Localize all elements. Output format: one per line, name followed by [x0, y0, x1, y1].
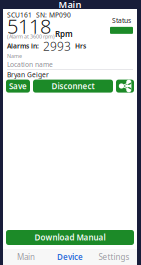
staticText: Hrs: [75, 42, 86, 50]
staticText: SCU161 SN: MP090: [7, 11, 71, 19]
button[interactable]: Disconnect: [33, 80, 113, 93]
staticText: Settings: [98, 252, 129, 262]
button[interactable]: Settings: [92, 249, 136, 265]
staticText: 2993: [43, 38, 71, 54]
staticText: Download Manual: [34, 232, 105, 243]
staticText: Main: [17, 252, 35, 262]
button[interactable]: Device: [48, 249, 92, 265]
button[interactable]: Share: [116, 80, 134, 93]
button[interactable]: Download Manual: [6, 230, 134, 245]
staticText: Status: [112, 16, 131, 25]
staticText: Device: [57, 252, 83, 262]
button[interactable]: Save: [6, 80, 30, 93]
staticText: Name: [7, 52, 22, 60]
staticText: Alarms in:: [7, 42, 39, 50]
staticText: 5118: [7, 13, 51, 39]
button[interactable]: Main: [4, 249, 48, 265]
staticText: Rpm: [55, 29, 73, 39]
staticText: Disconnect: [51, 81, 94, 91]
staticText: (Alarm at 3600 rpm): [7, 33, 55, 40]
staticText: Location name: [7, 60, 53, 69]
staticText: Save: [9, 81, 27, 91]
staticText: Bryan Geiger: [7, 70, 49, 79]
staticText: Main: [58, 0, 81, 11]
